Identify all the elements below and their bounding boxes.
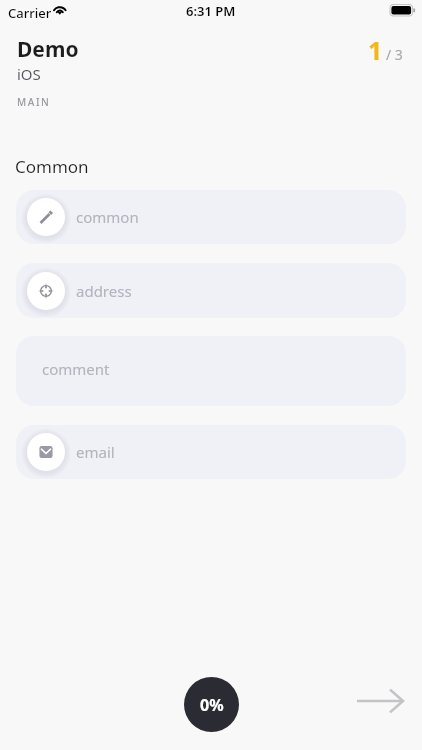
staticText: 0% [200, 694, 224, 716]
staticText: MAIN [17, 95, 51, 109]
staticText: address [76, 281, 132, 301]
staticText: Demo [17, 35, 79, 64]
button[interactable]: Edit [16, 190, 406, 244]
staticText: comment [42, 359, 110, 379]
staticText: iOS [17, 64, 41, 84]
button[interactable]: Email [16, 425, 406, 479]
staticText: common [76, 207, 139, 227]
other: Email [38, 444, 54, 460]
button[interactable]: comment [16, 336, 406, 406]
other: Edit [38, 209, 54, 225]
button[interactable]: 0% [184, 677, 239, 732]
button[interactable]: Locate [16, 263, 406, 318]
staticText: / 3 [386, 45, 403, 64]
staticText: Carrier [8, 4, 52, 22]
staticText: 1 [368, 33, 383, 67]
staticText: Common [15, 155, 89, 178]
staticText: 6:31 PM [186, 2, 236, 20]
other: Locate [38, 283, 54, 299]
button[interactable]: Next [348, 681, 410, 721]
staticText: email [76, 442, 115, 462]
